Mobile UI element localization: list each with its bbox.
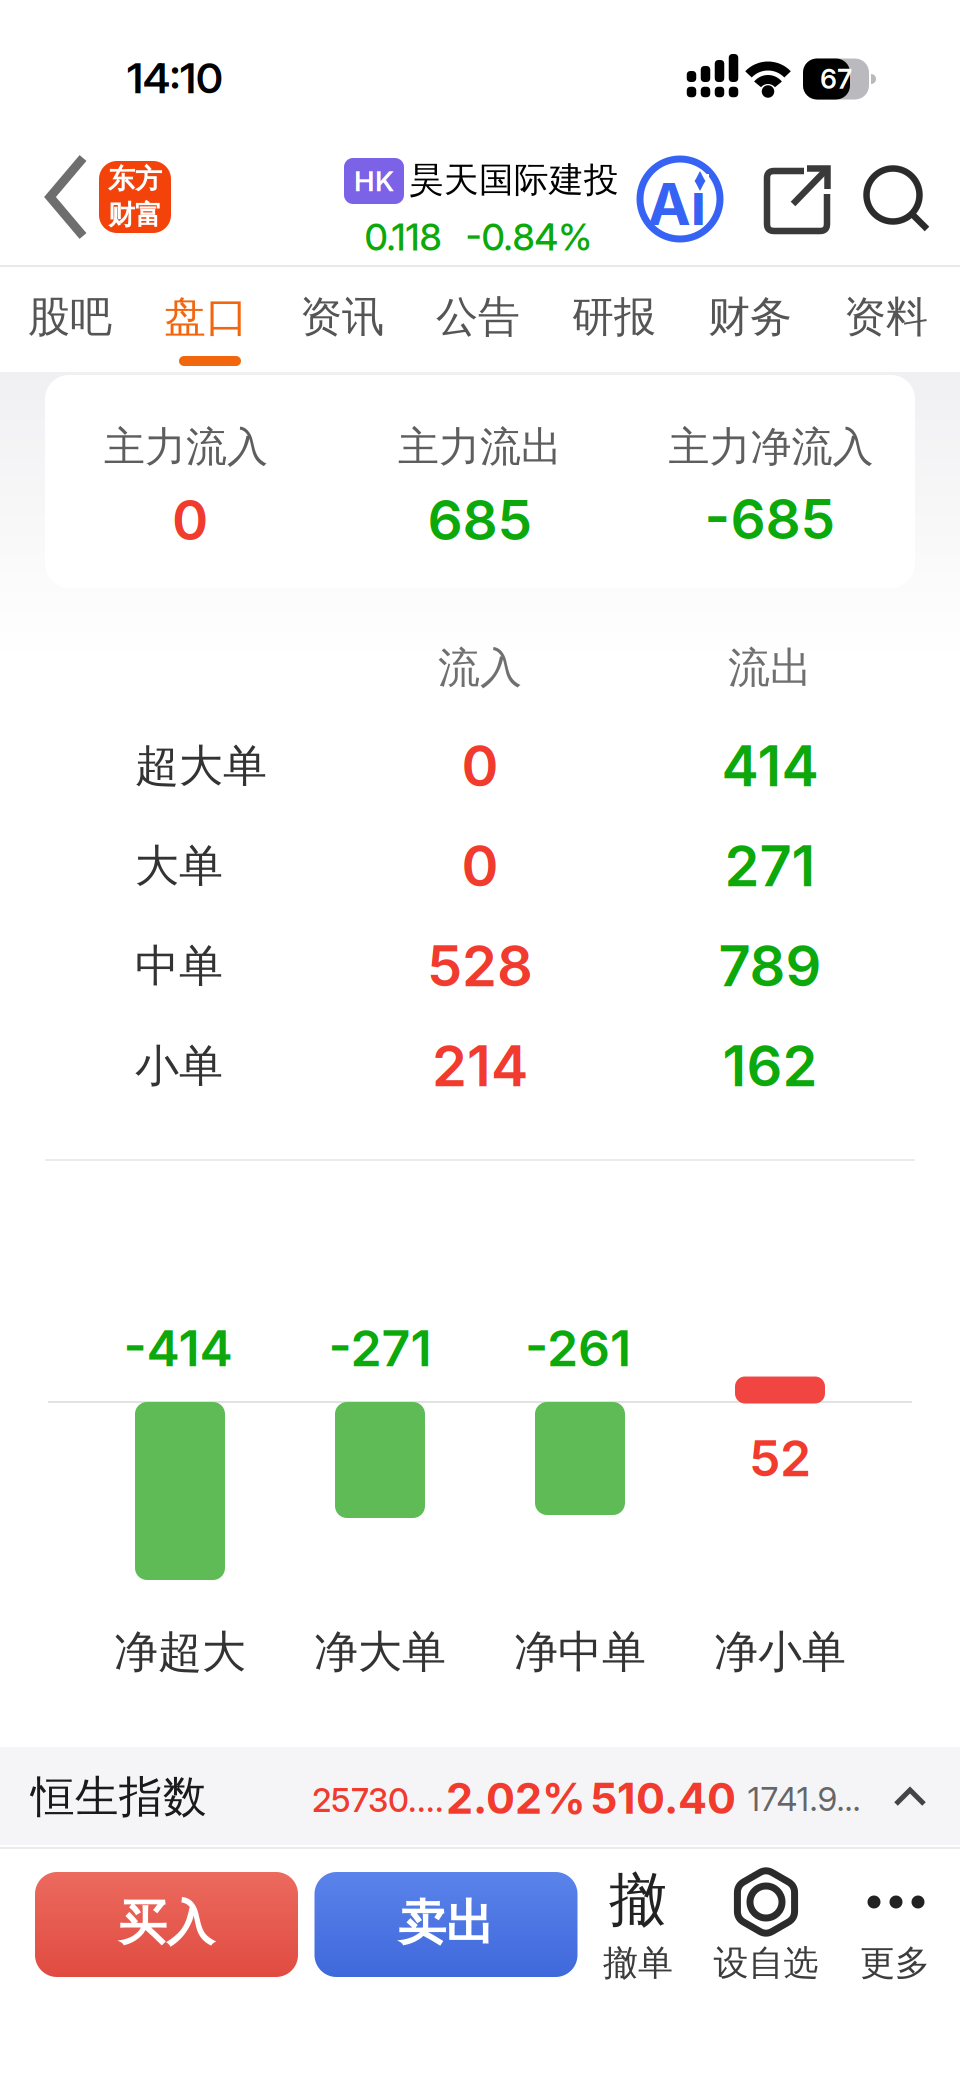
staticText: 67: [820, 63, 852, 95]
staticText: 主力净流入: [668, 421, 873, 473]
staticText: 撤: [609, 1863, 667, 1937]
staticText: -414: [123, 1318, 232, 1378]
staticText: 685: [427, 487, 532, 553]
staticText: 510.40: [590, 1772, 736, 1824]
staticText: 162: [722, 1032, 817, 1100]
staticText: 净大单: [314, 1624, 446, 1680]
staticText: 净中单: [514, 1624, 646, 1680]
staticText: 流出: [728, 641, 812, 694]
staticText: 净超大: [114, 1624, 246, 1680]
staticText: Ai: [647, 169, 706, 239]
staticText: 设自选: [713, 1941, 818, 1985]
staticText: 小单: [135, 1038, 223, 1094]
staticText: 流入: [438, 641, 522, 694]
staticText: 超大单: [135, 738, 267, 794]
staticText: -0.84%: [465, 215, 591, 259]
staticText: 财富: [108, 198, 162, 232]
staticText: 14:10: [127, 53, 223, 103]
staticText: 中单: [135, 938, 223, 994]
staticText: 528: [427, 932, 533, 1000]
staticText: 股吧: [28, 290, 112, 343]
staticText: 1741.9...: [747, 1779, 860, 1819]
staticText: 昊天国际建投: [409, 158, 619, 202]
staticText: HK: [354, 164, 394, 198]
staticText: 东方: [108, 162, 162, 196]
staticText: 0: [461, 832, 498, 900]
staticText: 2.02%: [446, 1772, 586, 1824]
staticText: 盘口: [164, 290, 248, 343]
staticText: 恒生指数: [31, 1770, 207, 1824]
staticText: 买入: [118, 1893, 214, 1953]
staticText: -261: [525, 1318, 631, 1378]
staticText: 271: [724, 832, 815, 900]
staticText: 主力流出: [398, 421, 562, 473]
staticText: 净小单: [714, 1624, 846, 1680]
staticText: 789: [718, 932, 821, 1000]
staticText: 214: [432, 1032, 528, 1100]
staticText: 资讯: [300, 290, 384, 343]
staticText: 0: [461, 732, 498, 800]
staticText: -271: [328, 1318, 431, 1378]
staticText: 25730....: [312, 1780, 444, 1820]
staticText: 大单: [135, 838, 223, 894]
staticText: 研报: [572, 290, 656, 343]
staticText: 卖出: [398, 1893, 494, 1953]
staticText: 0: [172, 487, 208, 553]
staticText: 更多: [860, 1941, 930, 1985]
staticText: 撤单: [603, 1941, 673, 1985]
staticText: 主力流入: [104, 421, 268, 473]
staticText: 52: [749, 1428, 811, 1488]
staticText: 资料: [844, 290, 928, 343]
staticText: 0.118: [364, 215, 441, 259]
staticText: -685: [704, 486, 835, 552]
staticText: 公告: [436, 290, 520, 343]
staticText: 财务: [708, 290, 792, 343]
staticText: 414: [721, 732, 818, 800]
